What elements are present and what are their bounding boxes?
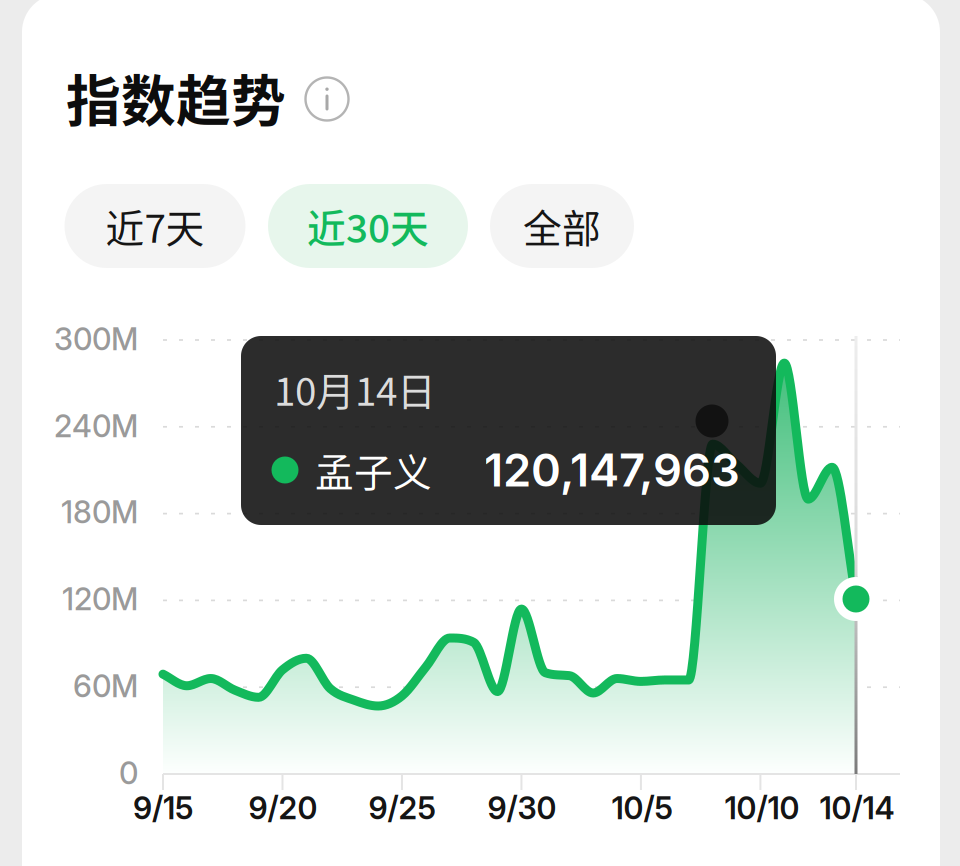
staticText: 10月14日 [274,361,436,417]
staticText: 9/25 [368,789,435,826]
staticText: 孟子义 [315,442,432,498]
staticText: 全部 [523,198,601,254]
staticText: 9/30 [487,789,556,826]
staticText: 近7天 [105,198,204,254]
staticText: 60M [73,667,138,704]
staticText: 120,147,963 [484,443,740,497]
staticText: 10/10 [724,789,799,826]
staticText: 9/15 [133,789,193,826]
staticText: 120M [62,580,138,617]
button[interactable]: 近30天 [268,184,468,268]
staticText: 指数趋势 [66,57,286,137]
staticText: 300M [54,320,138,357]
button[interactable]: 全部 [490,184,634,268]
staticText: 10/5 [611,789,672,826]
staticText: 0 [119,754,138,791]
button[interactable]: 指数趋势说明 [298,70,356,128]
staticText: 180M [61,493,138,530]
staticText: 近30天 [307,198,429,254]
button[interactable]: 近7天 [64,184,245,268]
staticText: 10/14 [819,789,894,826]
staticText: 240M [54,407,138,444]
staticText: 9/20 [248,789,317,826]
